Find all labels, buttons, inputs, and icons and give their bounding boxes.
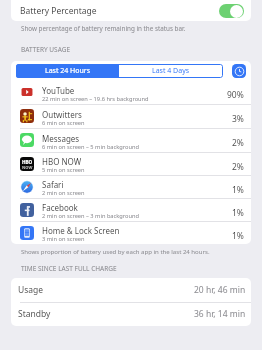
staticText: 90%: [227, 89, 244, 101]
staticText: Shows proportion of battery used by each…: [21, 248, 210, 256]
staticText: Battery Percentage: [20, 5, 97, 17]
staticText: YouTube: [42, 85, 75, 96]
staticText: 3%: [232, 113, 244, 125]
staticText: Safari: [42, 179, 64, 190]
staticText: 1%: [232, 184, 244, 196]
staticText: Messages: [42, 133, 80, 144]
staticText: 5 min on screen: [42, 166, 85, 174]
button[interactable]: Last 4 Days: [119, 64, 223, 78]
button[interactable]: HBO: [11, 152, 251, 175]
staticText: Last 24 Hours: [45, 66, 91, 76]
staticText: Outwitters: [42, 109, 82, 120]
staticText: 3 min on screen: [42, 235, 85, 243]
button[interactable]: Safari: [11, 175, 251, 198]
button[interactable]: Standby: [11, 302, 251, 326]
staticText: TIME SINCE LAST FULL CHARGE: [21, 264, 117, 273]
staticText: Standby: [18, 308, 51, 320]
button[interactable]: Usage: [11, 278, 251, 302]
staticText: HBO: [22, 159, 33, 165]
staticText: Facebook: [42, 202, 78, 213]
staticText: 20 hr, 46 min: [194, 284, 246, 296]
staticText: HBO NOW: [42, 156, 82, 167]
button[interactable]: Messages: [11, 128, 251, 152]
staticText: 2 min on screen: [42, 189, 85, 197]
staticText: 1%: [232, 230, 244, 242]
staticText: Last 4 Days: [152, 66, 190, 76]
staticText: 6 min on screen – 5 min background: [42, 143, 140, 151]
button[interactable]: Facebook: [11, 198, 251, 221]
staticText: NOW: [22, 165, 33, 170]
button[interactable]: Battery Percentage: [11, 0, 251, 21]
staticText: 36 hr, 14 min: [194, 308, 246, 320]
button[interactable]: Home & Lock Screen: [11, 221, 251, 244]
staticText: 1%: [232, 207, 244, 219]
button[interactable]: Battery Percentage: [219, 4, 244, 18]
button[interactable]: Show battery usage over time: [232, 64, 246, 78]
staticText: 2%: [232, 137, 244, 149]
button[interactable]: Outwitters: [11, 104, 251, 128]
staticText: 6 min on screen: [42, 119, 85, 127]
staticText: Home & Lock Screen: [42, 225, 120, 236]
staticText: 2 min on screen – 3 min background: [42, 212, 140, 220]
staticText: Usage: [18, 284, 44, 296]
staticText: 22 min on screen – 19.6 hrs background: [42, 95, 149, 103]
staticText: BATTERY USAGE: [21, 45, 70, 54]
staticText: 2%: [232, 161, 244, 173]
staticText: Show percentage of battery remaining in …: [21, 24, 186, 33]
button[interactable]: Last 24 Hours: [16, 64, 119, 78]
button[interactable]: YouTube: [11, 80, 251, 104]
